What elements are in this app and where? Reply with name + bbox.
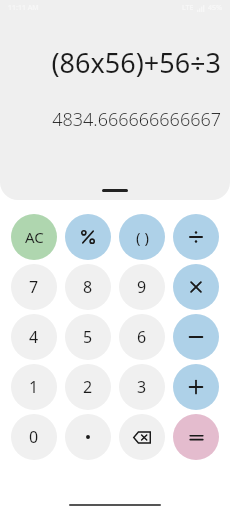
staticText: 4 <box>29 326 39 348</box>
button[interactable]: Backspace <box>119 414 165 460</box>
staticText: 1 <box>29 376 39 398</box>
button[interactable]: Equals <box>173 414 219 460</box>
button[interactable]: Decimal point <box>65 414 111 460</box>
button[interactable]: 7 <box>11 264 57 310</box>
button[interactable]: Expand history <box>102 189 128 192</box>
button[interactable]: 8 <box>65 264 111 310</box>
button[interactable]: 2 <box>65 364 111 410</box>
button[interactable]: 1 <box>11 364 57 410</box>
button[interactable]: 0 <box>11 414 57 460</box>
staticText: AC <box>25 227 44 247</box>
button[interactable]: Minus <box>173 314 219 360</box>
button[interactable]: 4 <box>11 314 57 360</box>
button[interactable]: Divide <box>173 214 219 260</box>
button[interactable]: Plus <box>173 364 219 410</box>
button[interactable]: 6 <box>119 314 165 360</box>
staticText: (86x56)+56÷3 <box>10 44 221 81</box>
staticText: 8 <box>83 276 93 298</box>
button[interactable]: ( ) <box>119 214 165 260</box>
button[interactable]: Multiply <box>173 264 219 310</box>
staticText: 6 <box>137 326 147 348</box>
button[interactable]: 5 <box>65 314 111 360</box>
staticText: 2 <box>83 376 93 398</box>
staticText: 3 <box>137 376 147 398</box>
staticText: ( ) <box>136 227 149 247</box>
button[interactable]: 3 <box>119 364 165 410</box>
staticText: 4834.666666666667 <box>10 107 221 132</box>
button[interactable]: AC <box>11 214 57 260</box>
staticText: 9 <box>137 276 147 298</box>
button[interactable]: Percent <box>65 214 111 260</box>
staticText: 5 <box>83 326 93 348</box>
staticText: 0 <box>29 426 39 448</box>
staticText: 7 <box>29 276 39 298</box>
button[interactable]: 9 <box>119 264 165 310</box>
